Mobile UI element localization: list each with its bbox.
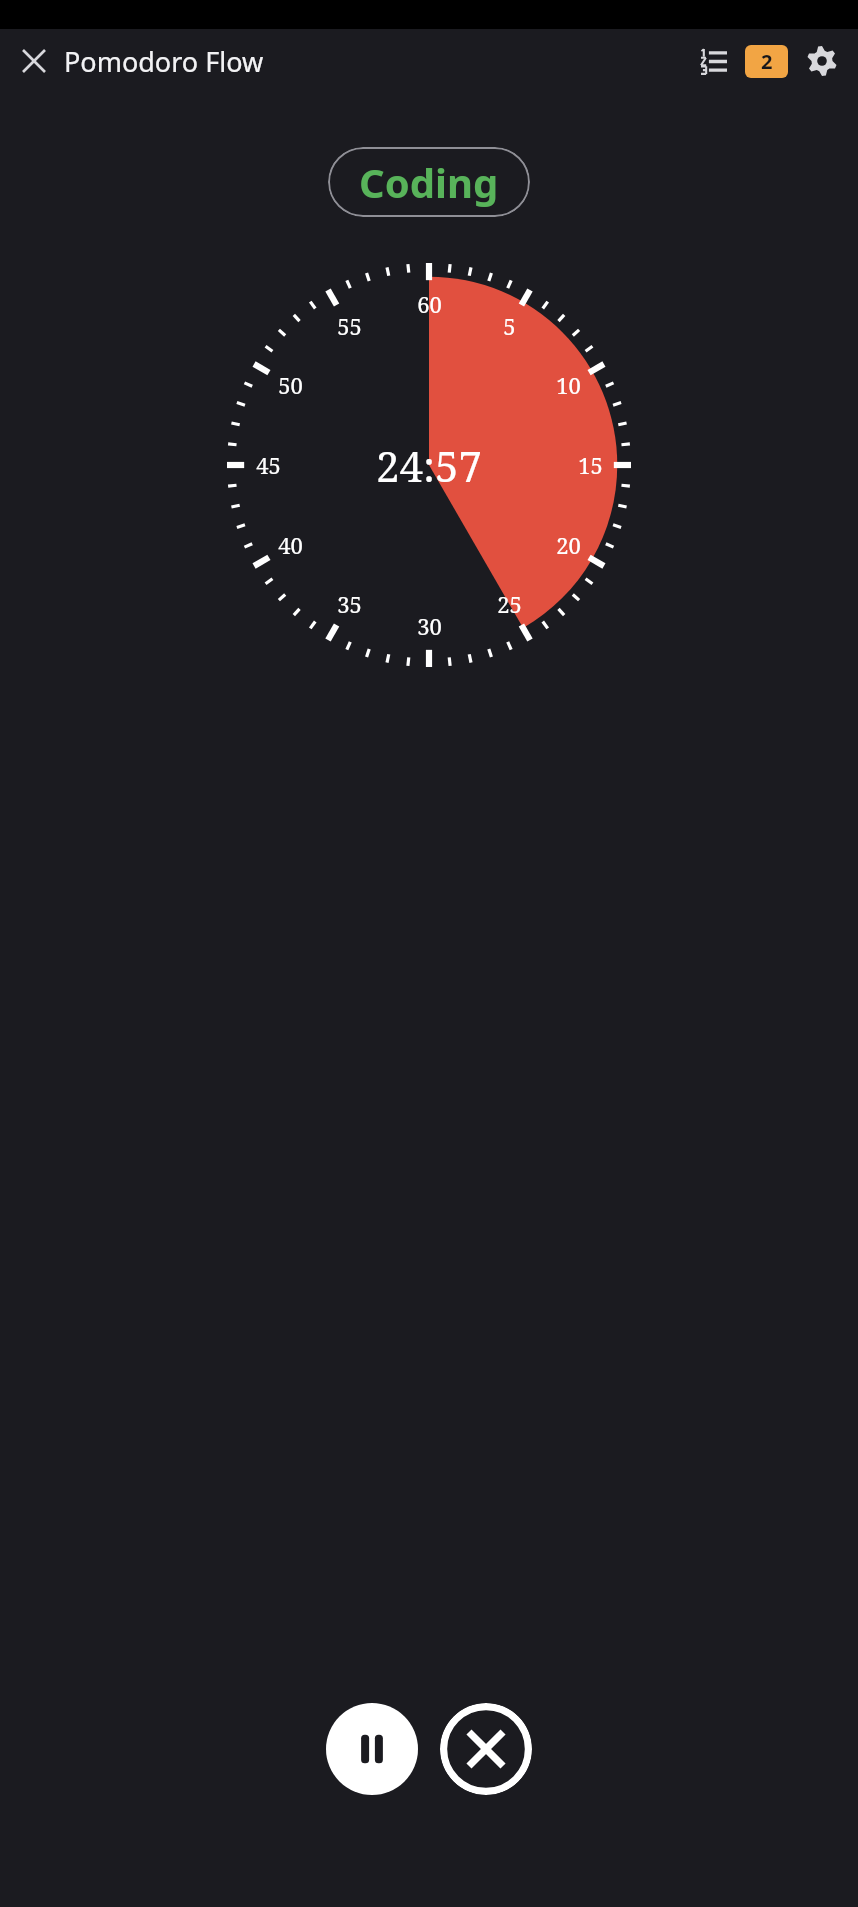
button[interactable]: Pause <box>326 1703 418 1795</box>
button[interactable]: Task list <box>689 37 737 85</box>
button[interactable]: Stop <box>440 1703 532 1795</box>
staticText: 24:57 <box>376 437 482 494</box>
staticText: 60 <box>417 289 442 319</box>
staticText: 35 <box>337 589 362 619</box>
staticText: 30 <box>417 611 442 641</box>
staticText: 15 <box>578 450 603 480</box>
staticText: 50 <box>278 370 303 400</box>
staticText: 5 <box>503 311 516 341</box>
button[interactable]: Timer dial, 24 minutes 57 seconds remain… <box>227 263 631 667</box>
staticText: Pomodoro Flow <box>64 43 264 80</box>
button[interactable]: Coding <box>328 147 530 217</box>
staticText: 55 <box>337 311 362 341</box>
staticText: 20 <box>556 530 581 560</box>
staticText: 40 <box>278 530 303 560</box>
staticText: 10 <box>556 370 581 400</box>
staticText: 45 <box>256 450 281 480</box>
button[interactable]: 2 <box>745 45 788 78</box>
button[interactable]: Close <box>10 37 58 85</box>
staticText: 25 <box>497 589 522 619</box>
button[interactable]: Settings <box>798 37 846 85</box>
staticText: 2 <box>761 48 773 75</box>
staticText: Coding <box>359 155 499 209</box>
